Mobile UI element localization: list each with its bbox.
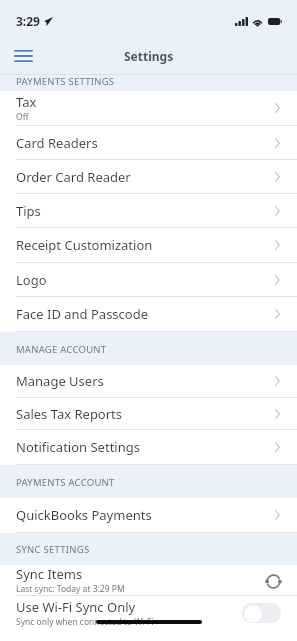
staticText: Sales Tax Reports bbox=[16, 405, 123, 423]
staticText: Tips bbox=[16, 202, 41, 220]
button[interactable]: Sync Items bbox=[0, 565, 297, 596]
staticText: PAYMENTS ACCOUNT bbox=[16, 476, 115, 489]
button[interactable]: Sync now bbox=[263, 570, 283, 590]
button[interactable]: Card Readers bbox=[0, 126, 297, 160]
staticText: Last sync: Today at 3:29 PM bbox=[16, 583, 125, 595]
staticText: Tax bbox=[16, 93, 37, 111]
button[interactable]: Manage Users bbox=[0, 365, 297, 398]
staticText: Notification Settings bbox=[16, 438, 140, 456]
staticText: Receipt Customization bbox=[16, 236, 153, 254]
button[interactable]: Order Card Reader bbox=[0, 160, 297, 194]
button[interactable]: Menu bbox=[8, 42, 38, 70]
button[interactable]: Receipt Customization bbox=[0, 228, 297, 263]
staticText: Order Card Reader bbox=[16, 168, 131, 186]
staticText: MANAGE ACCOUNT bbox=[16, 343, 107, 356]
button[interactable]: Sales Tax Reports bbox=[0, 398, 297, 430]
staticText: 3:29 bbox=[16, 13, 40, 29]
staticText: Off bbox=[16, 111, 29, 123]
button[interactable]: Use Wi-Fi Sync Only bbox=[242, 603, 281, 623]
staticText: QuickBooks Payments bbox=[16, 506, 152, 524]
staticText: Sync Items bbox=[16, 565, 83, 583]
button[interactable]: Tax bbox=[0, 91, 297, 126]
staticText: SYNC SETTINGS bbox=[16, 543, 90, 556]
staticText: Card Readers bbox=[16, 134, 98, 152]
staticText: Settings bbox=[124, 48, 174, 64]
staticText: Sync only when connected to Wi-Fi bbox=[16, 616, 154, 628]
button[interactable]: Use Wi-Fi Sync Only bbox=[0, 596, 297, 630]
staticText: Manage Users bbox=[16, 372, 104, 390]
button[interactable]: QuickBooks Payments bbox=[0, 498, 297, 533]
staticText: Face ID and Passcode bbox=[16, 305, 149, 323]
button[interactable]: Tips bbox=[0, 194, 297, 228]
staticText: Use Wi-Fi Sync Only bbox=[16, 598, 136, 616]
button[interactable]: Face ID and Passcode bbox=[0, 297, 297, 332]
button[interactable]: Logo bbox=[0, 263, 297, 297]
staticText: PAYMENTS SETTINGS bbox=[16, 75, 115, 85]
staticText: Logo bbox=[16, 271, 47, 289]
button[interactable]: Notification Settings bbox=[0, 430, 297, 465]
